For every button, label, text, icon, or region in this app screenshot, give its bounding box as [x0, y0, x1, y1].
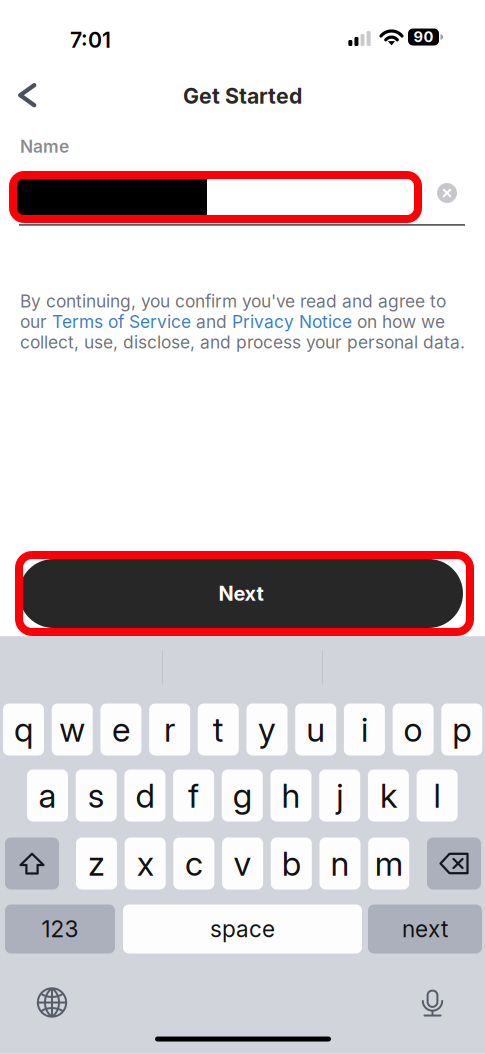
button[interactable]: s	[76, 769, 117, 821]
staticText: n	[330, 843, 349, 884]
staticText: Get Started	[183, 83, 302, 109]
button[interactable]: r	[149, 703, 190, 755]
button[interactable]: l	[417, 769, 458, 821]
button[interactable]: Delete	[427, 837, 481, 889]
button[interactable]: t	[198, 703, 239, 755]
button[interactable]: Next	[19, 559, 463, 628]
button[interactable]: Shift	[5, 837, 59, 889]
button[interactable]: n	[319, 837, 360, 889]
staticText: f	[188, 775, 199, 816]
staticText: s	[88, 775, 105, 816]
button[interactable]: c	[173, 837, 214, 889]
staticText: e	[112, 709, 130, 750]
button[interactable]: 123	[5, 904, 115, 953]
staticText: 90	[413, 28, 433, 46]
button[interactable]: o	[393, 703, 434, 755]
button[interactable]: w	[52, 703, 93, 755]
staticText: v	[234, 843, 252, 884]
staticText: a	[38, 775, 56, 816]
staticText: l	[434, 775, 441, 816]
staticText: u	[306, 709, 325, 750]
button[interactable]: next	[368, 904, 482, 953]
button[interactable]: j	[319, 769, 360, 821]
staticText: Name	[20, 136, 69, 157]
button[interactable]: m	[368, 837, 409, 889]
staticText: y	[258, 709, 276, 750]
staticText: x	[137, 843, 154, 884]
staticText: r	[164, 709, 175, 750]
staticText: 7:01	[70, 27, 111, 53]
button[interactable]: k	[368, 769, 409, 821]
button[interactable]: v	[222, 837, 263, 889]
staticText: w	[59, 709, 85, 750]
staticText: space	[210, 915, 275, 943]
staticText: p	[452, 709, 471, 750]
button[interactable]: e	[100, 703, 141, 755]
staticText: c	[185, 843, 203, 884]
staticText: q	[14, 709, 33, 750]
button[interactable]: x	[125, 837, 166, 889]
button[interactable]: y	[246, 703, 287, 755]
button[interactable]: h	[270, 769, 311, 821]
staticText: i	[361, 709, 368, 750]
staticText: next	[402, 915, 448, 943]
staticText: g	[233, 775, 252, 816]
button[interactable]: space	[123, 904, 362, 953]
staticText: By continuing, you confirm you've read a…	[20, 291, 465, 352]
staticText: z	[88, 843, 105, 884]
button[interactable]: Next keyboard	[26, 976, 78, 1028]
button[interactable]: d	[124, 769, 165, 821]
staticText: k	[380, 775, 397, 816]
button[interactable]: Clear text	[427, 173, 467, 213]
button[interactable]: i	[344, 703, 385, 755]
staticText: m	[375, 843, 403, 884]
button[interactable]: p	[441, 703, 482, 755]
staticText: Next	[218, 581, 263, 606]
staticText: d	[135, 775, 154, 816]
staticText: b	[282, 843, 301, 884]
button[interactable]: Back	[6, 74, 48, 116]
button[interactable]: a	[27, 769, 68, 821]
staticText: j	[336, 775, 343, 816]
staticText: h	[281, 775, 300, 816]
staticText: 123	[41, 915, 78, 943]
button[interactable]: g	[222, 769, 263, 821]
button[interactable]: q	[3, 703, 44, 755]
button[interactable]: z	[76, 837, 117, 889]
button[interactable]: f	[173, 769, 214, 821]
staticText: o	[404, 709, 423, 750]
button[interactable]: Dictate	[409, 977, 456, 1027]
staticText: t	[213, 709, 224, 750]
button[interactable]: u	[295, 703, 336, 755]
button[interactable]: b	[271, 837, 312, 889]
